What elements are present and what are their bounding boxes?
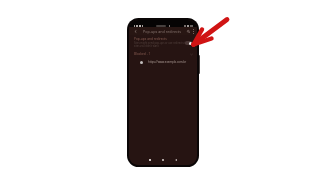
- staticText: https://www.exemplo.com.br: [148, 60, 187, 64]
- staticText: Pop-ups and redirects: [134, 37, 167, 41]
- staticText: Pop-ups and redirects: [143, 29, 186, 34]
- staticText: Blocked - 1: [134, 52, 151, 56]
- button[interactable]: More options: [191, 29, 196, 34]
- button[interactable]: https://www.exemplo.com.br: [129, 57, 197, 66]
- button[interactable]: Pop-ups and redirects: [129, 35, 197, 48]
- button[interactable]: Back: [133, 29, 138, 34]
- button[interactable]: Toggle pop-ups and redirects: [185, 41, 192, 45]
- button[interactable]: Search: [186, 29, 191, 34]
- button[interactable]: Recent apps: [146, 156, 154, 164]
- staticText: Sites might send pop-ups or use redirect…: [134, 41, 195, 47]
- button[interactable]: Home: [159, 156, 167, 164]
- button[interactable]: Back: [172, 156, 180, 164]
- button[interactable]: Blocked - 1: [129, 48, 197, 57]
